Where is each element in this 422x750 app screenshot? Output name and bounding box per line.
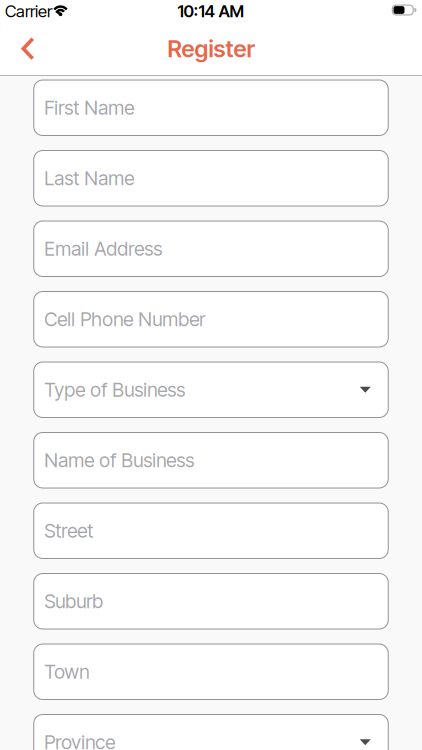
staticText: Type of Business bbox=[44, 378, 185, 401]
button[interactable]: Email Address bbox=[33, 220, 389, 277]
staticText: First Name bbox=[44, 96, 134, 119]
button[interactable]: Cell Phone Number bbox=[33, 291, 389, 347]
staticText: Name of Business bbox=[44, 449, 194, 472]
staticText: Cell Phone Number bbox=[44, 308, 205, 331]
button[interactable]: Town bbox=[33, 643, 389, 700]
staticText: Province bbox=[44, 731, 115, 750]
button[interactable]: Suburb bbox=[33, 573, 389, 629]
staticText: Last Name bbox=[44, 167, 134, 190]
button[interactable]: First Name bbox=[33, 79, 389, 136]
staticText: 10:14 AM bbox=[177, 1, 244, 21]
button[interactable]: Last Name bbox=[33, 150, 389, 206]
staticText: Email Address bbox=[44, 237, 162, 260]
button[interactable]: Street bbox=[33, 502, 389, 559]
staticText: Carrier bbox=[5, 1, 52, 21]
button[interactable]: Name of Business bbox=[33, 432, 389, 488]
button[interactable]: Back bbox=[0, 37, 48, 61]
staticText: Street bbox=[44, 519, 93, 542]
staticText: Register bbox=[167, 35, 254, 63]
staticText: Town bbox=[44, 660, 89, 683]
staticText: Suburb bbox=[44, 590, 103, 613]
button[interactable]: Province bbox=[33, 714, 389, 750]
button[interactable]: Type of Business bbox=[33, 361, 389, 418]
